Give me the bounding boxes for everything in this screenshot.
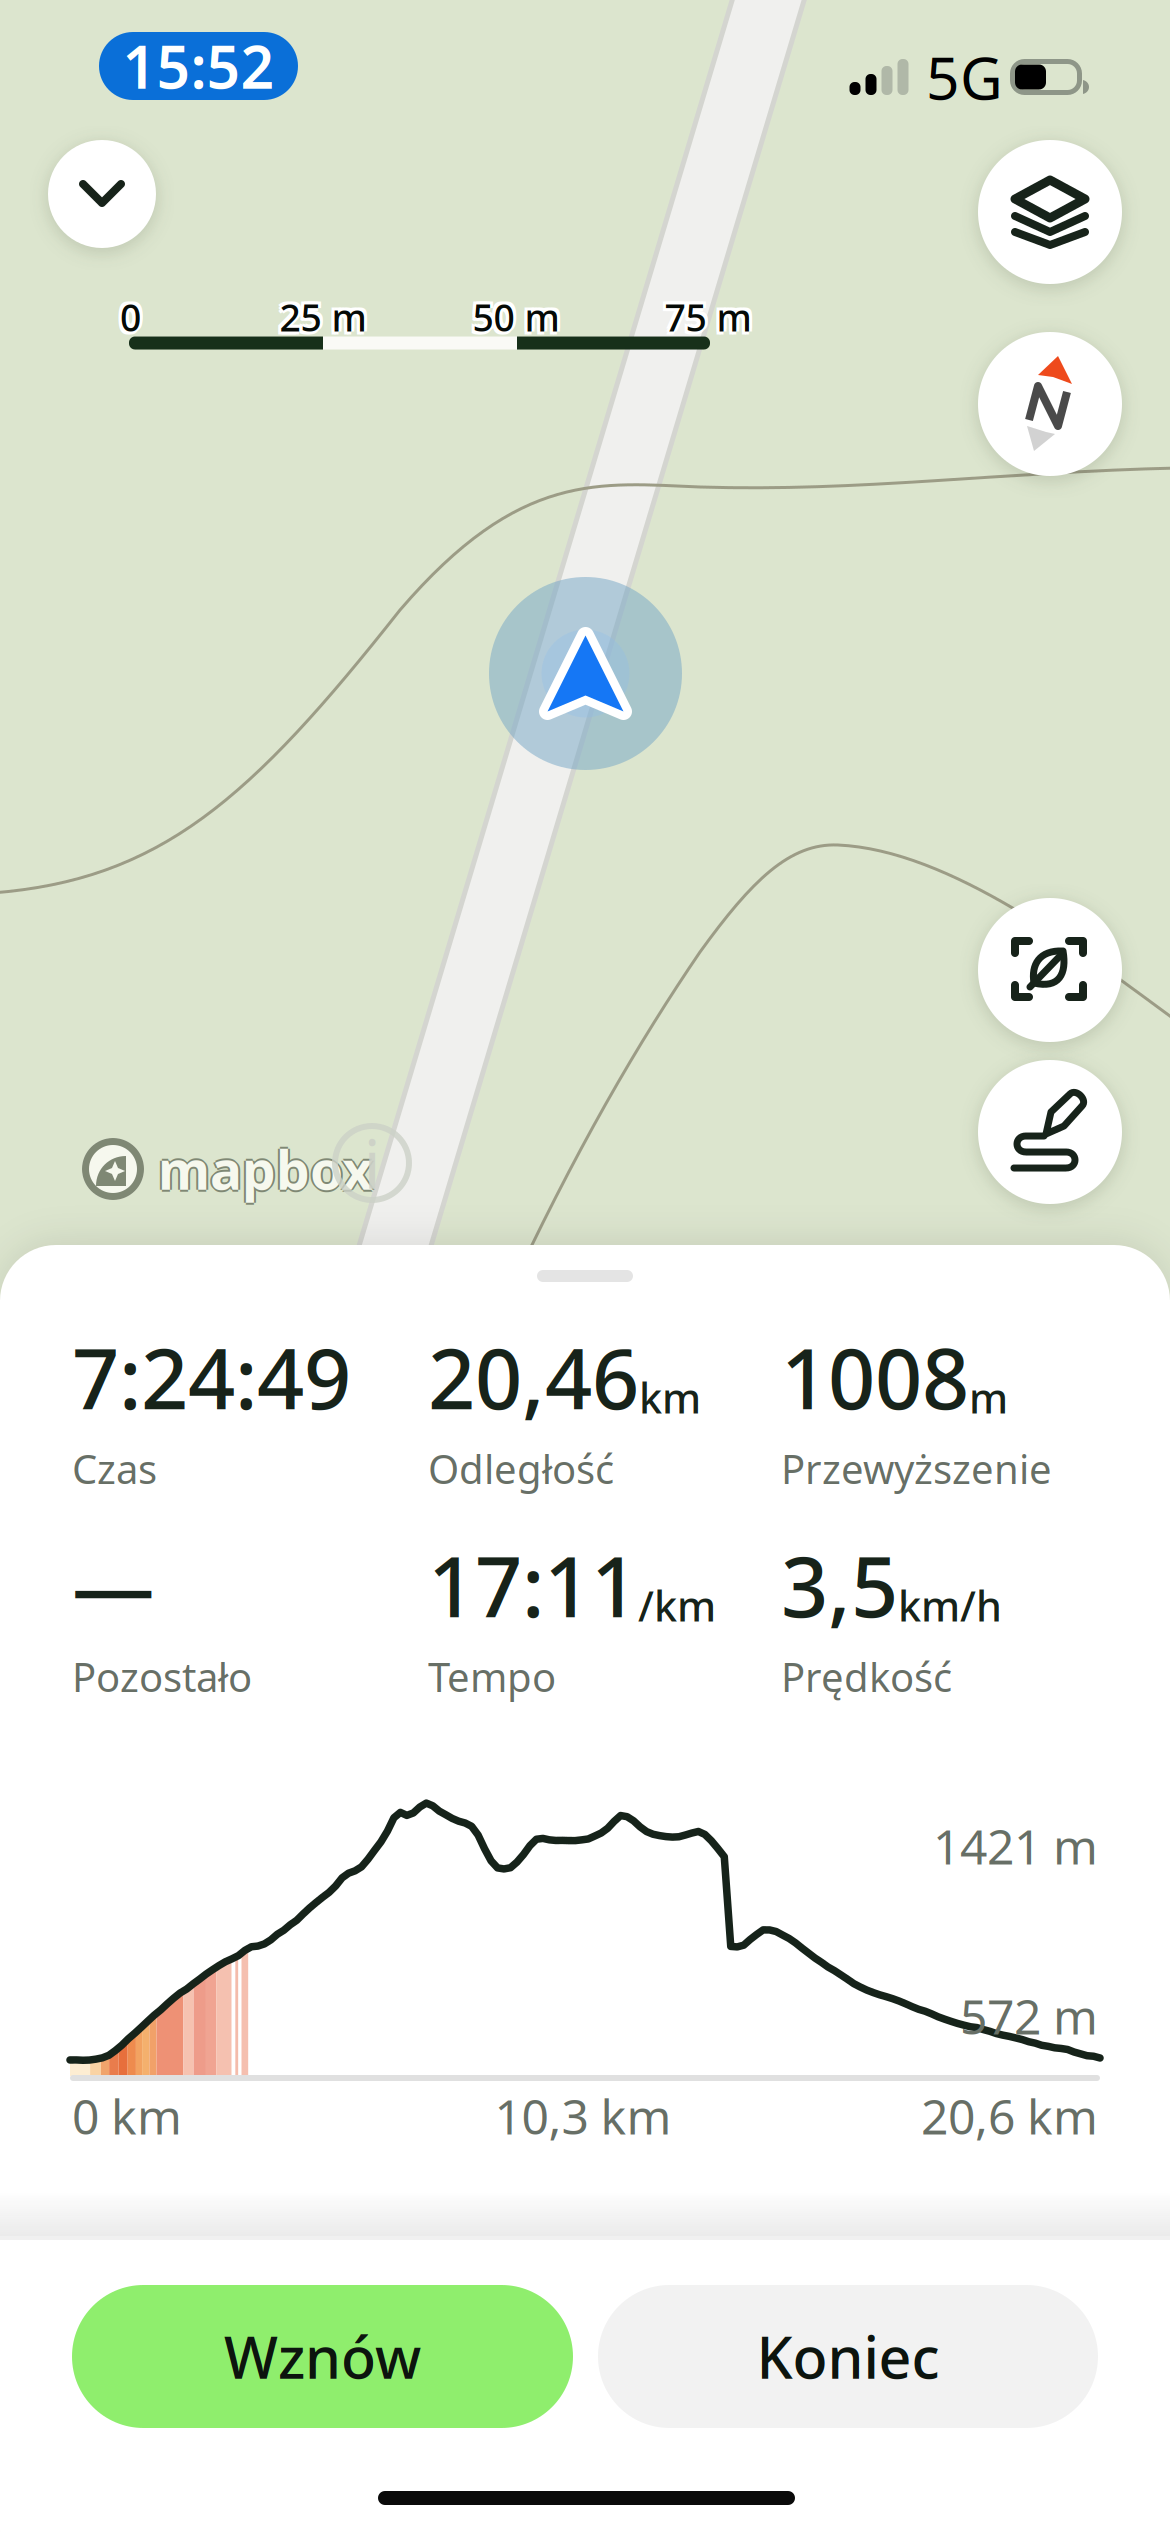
button[interactable]: Compass north xyxy=(978,332,1122,476)
staticText: 50 m xyxy=(472,295,559,345)
staticText: 75 m xyxy=(661,292,748,342)
staticText: mapbox xyxy=(156,1134,371,1204)
staticText: 75 m xyxy=(664,292,751,342)
button[interactable]: Plan route xyxy=(978,1060,1122,1204)
staticText: 25 m xyxy=(276,289,363,339)
button[interactable]: Wznów xyxy=(72,2285,573,2428)
staticText: 5G xyxy=(926,38,1003,116)
staticText: 50 m xyxy=(469,295,556,345)
staticText: km xyxy=(639,1370,701,1425)
staticText: 0 xyxy=(117,292,138,342)
staticText: 3,5 xyxy=(781,1530,898,1640)
staticText: 10,3 km xyxy=(494,2084,671,2148)
staticText: Prędkość xyxy=(781,1650,952,1703)
staticText: 75 m xyxy=(661,295,748,345)
staticText: 20,6 km xyxy=(921,2084,1098,2148)
staticText: 20,46 xyxy=(428,1322,639,1432)
staticText: 17:11 xyxy=(428,1530,638,1640)
staticText: 75 m xyxy=(664,289,751,339)
staticText: 25 m xyxy=(279,292,366,342)
button[interactable]: Identify plant xyxy=(978,898,1122,1042)
staticText: Koniec xyxy=(756,2318,939,2394)
staticText: 50 m xyxy=(469,292,556,342)
staticText: 0 xyxy=(120,295,141,345)
staticText: 1008 xyxy=(781,1322,969,1432)
staticText: km/h xyxy=(898,1578,1002,1633)
staticText: 25 m xyxy=(276,295,363,345)
staticText: 50 m xyxy=(469,289,556,339)
staticText: i xyxy=(363,1119,380,1207)
staticText: 75 m xyxy=(667,289,754,339)
staticText: Przewyższenie xyxy=(781,1442,1052,1495)
staticText: mapbox xyxy=(158,1134,373,1204)
staticText: 50 m xyxy=(475,289,562,339)
staticText: 50 m xyxy=(475,292,562,342)
staticText: Pozostało xyxy=(72,1650,252,1703)
staticText: Odległość xyxy=(428,1442,614,1495)
staticText: 50 m xyxy=(472,289,559,339)
staticText: 75 m xyxy=(664,292,751,342)
button[interactable]: Map layers xyxy=(978,140,1122,284)
staticText: /km xyxy=(638,1578,716,1633)
staticText: 1421 m xyxy=(933,1814,1098,1878)
staticText: 0 xyxy=(117,289,138,339)
staticText: 0 xyxy=(123,289,144,339)
button[interactable]: Collapse xyxy=(48,140,156,248)
staticText: 25 m xyxy=(276,292,363,342)
staticText: 50 m xyxy=(472,292,559,342)
staticText: 75 m xyxy=(661,289,748,339)
staticText: mapbox xyxy=(158,1136,373,1206)
staticText: 75 m xyxy=(667,292,754,342)
staticText: 0 xyxy=(120,292,141,342)
button[interactable]: Koniec xyxy=(598,2285,1098,2428)
staticText: Wznów xyxy=(224,2318,421,2394)
staticText: 0 km xyxy=(72,2084,182,2148)
staticText: 15:52 xyxy=(122,27,274,105)
staticText: Czas xyxy=(72,1442,157,1495)
button[interactable]: Map attribution xyxy=(332,1123,412,1203)
staticText: 0 xyxy=(123,292,144,342)
staticText: 25 m xyxy=(279,292,366,342)
staticText: 25 m xyxy=(279,289,366,339)
staticText: m xyxy=(969,1370,1008,1425)
staticText: 0 xyxy=(120,292,141,342)
staticText: 25 m xyxy=(279,295,366,345)
staticText: 25 m xyxy=(282,292,369,342)
staticText: mapbox xyxy=(160,1134,375,1204)
staticText: 7:24:49 xyxy=(72,1322,351,1432)
staticText: 0 xyxy=(117,295,138,345)
staticText: Tempo xyxy=(428,1650,556,1703)
staticText: 75 m xyxy=(664,295,751,345)
staticText: 25 m xyxy=(282,289,369,339)
staticText: 50 m xyxy=(472,292,559,342)
staticText: — xyxy=(72,1530,155,1640)
staticText: mapbox xyxy=(158,1132,373,1202)
staticText: 572 m xyxy=(960,1984,1098,2048)
staticText: 0 xyxy=(120,289,141,339)
